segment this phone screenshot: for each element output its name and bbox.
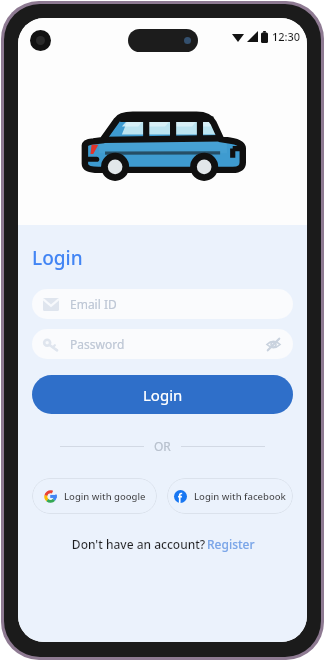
button[interactable]: Register: [207, 536, 255, 552]
button[interactable]: Login with google: [32, 478, 157, 514]
staticText: Login with google: [64, 490, 146, 503]
staticText: Don't have an account?: [70, 536, 207, 552]
button[interactable]: Password: [32, 329, 293, 359]
staticText: Password: [70, 336, 265, 352]
staticText: OR: [154, 438, 171, 454]
staticText: Register: [207, 536, 255, 552]
button[interactable]: Login with facebook: [167, 478, 293, 514]
staticText: Login with facebook: [194, 490, 286, 503]
button[interactable]: Login: [32, 375, 293, 414]
staticText: Email ID: [70, 296, 282, 312]
staticText: Login: [143, 385, 183, 405]
button[interactable]: Show password: [265, 336, 282, 353]
staticText: Login: [32, 245, 83, 271]
staticText: 12:30: [272, 29, 301, 44]
button[interactable]: Email ID: [32, 289, 293, 319]
